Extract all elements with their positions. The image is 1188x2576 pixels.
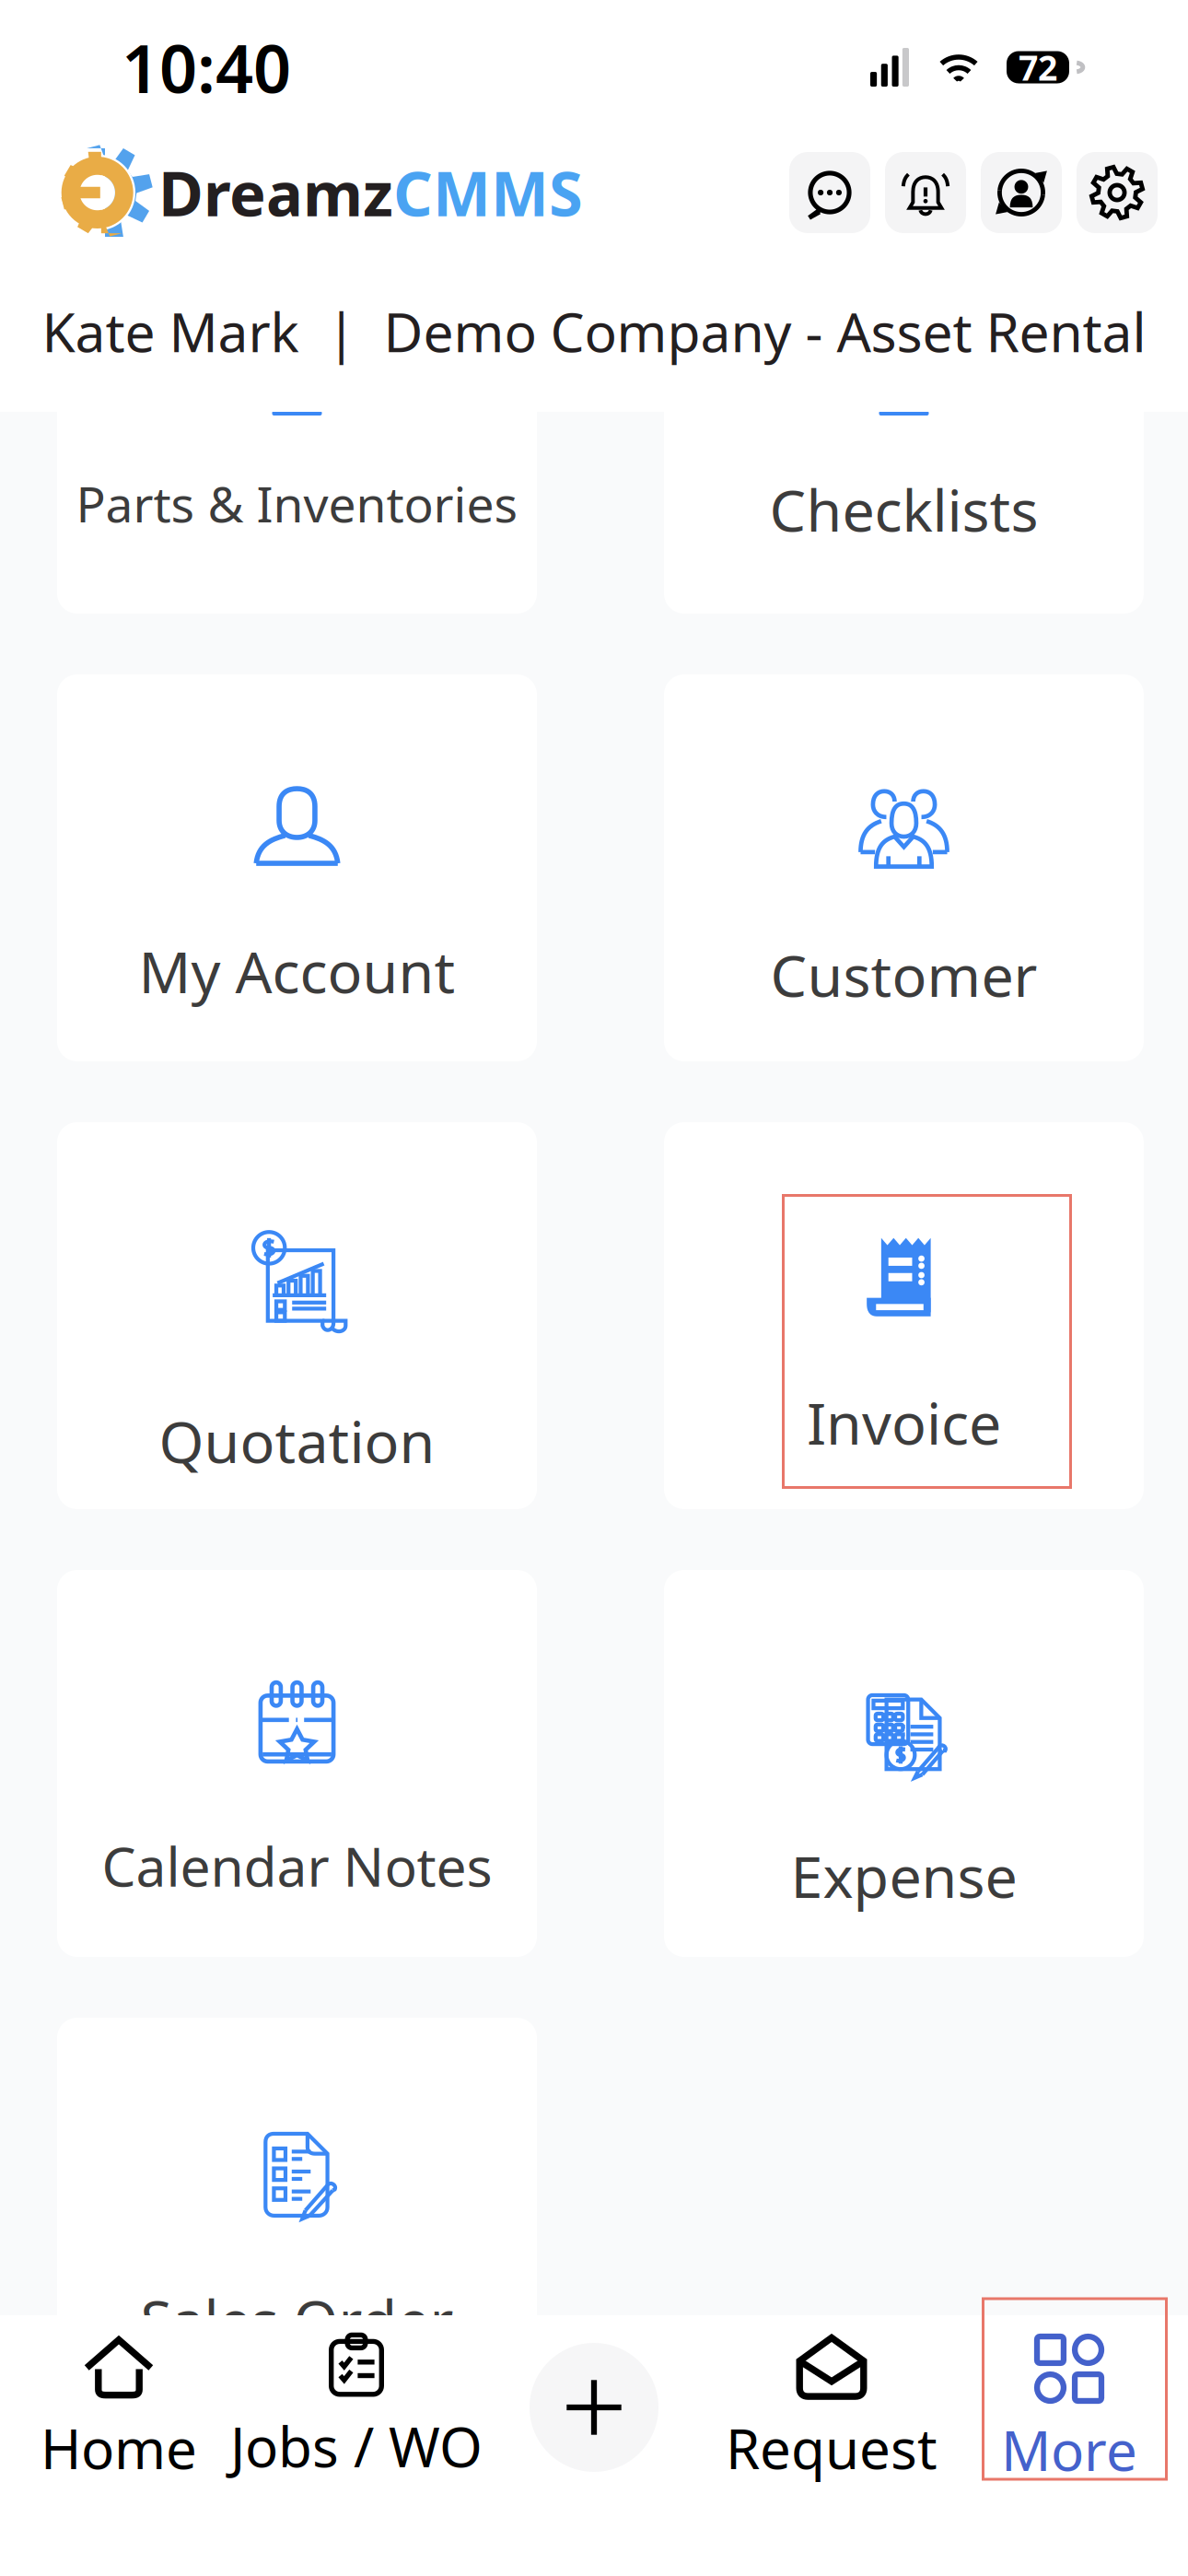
staticText: More [1001,2413,1137,2486]
button[interactable]: Quotation [57,1122,537,1509]
staticText: Sales Order [140,2281,454,2358]
button[interactable]: Invoice [664,1122,1144,1509]
button[interactable]: My Account [57,674,537,1061]
button[interactable]: Jobs / WO [238,2315,475,2500]
button[interactable]: Messages [789,152,870,233]
button[interactable]: Customer [664,674,1144,1061]
button[interactable]: More [950,2315,1188,2500]
staticText: Kate Mark | Demo Company - Asset Rental [42,295,1146,367]
button[interactable]: Request [713,2315,950,2500]
staticText: Home [41,2411,197,2485]
button[interactable]: Add [475,2315,713,2500]
staticText: Jobs / WO [230,2409,483,2483]
staticText: Invoice [807,1384,1001,1460]
button[interactable]: Sales Order [57,2018,537,2405]
button[interactable]: Parts & Inventories [57,227,537,614]
staticText: CMMS [393,152,583,233]
staticText: Checklists [769,471,1038,547]
staticText: Customer [770,936,1037,1013]
staticText: Calendar Notes [102,1830,492,1902]
button[interactable]: Home [0,2315,238,2500]
staticText: Quotation [159,1402,435,1479]
button[interactable]: Checklists [664,227,1144,614]
staticText: Request [726,2411,938,2485]
staticText: My Account [139,932,455,1009]
staticText: Dreamz [158,152,393,233]
button[interactable]: Calendar Notes [57,1570,537,1957]
staticText: 72 [1019,44,1057,90]
button[interactable]: Notifications [885,152,966,233]
staticText: Parts & Inventories [76,471,518,536]
staticText: 10:40 [122,23,291,111]
button[interactable]: Settings [1077,152,1158,233]
button[interactable]: Expense [664,1570,1144,1957]
button[interactable]: Switch user [981,152,1062,233]
staticText: Expense [791,1837,1017,1914]
